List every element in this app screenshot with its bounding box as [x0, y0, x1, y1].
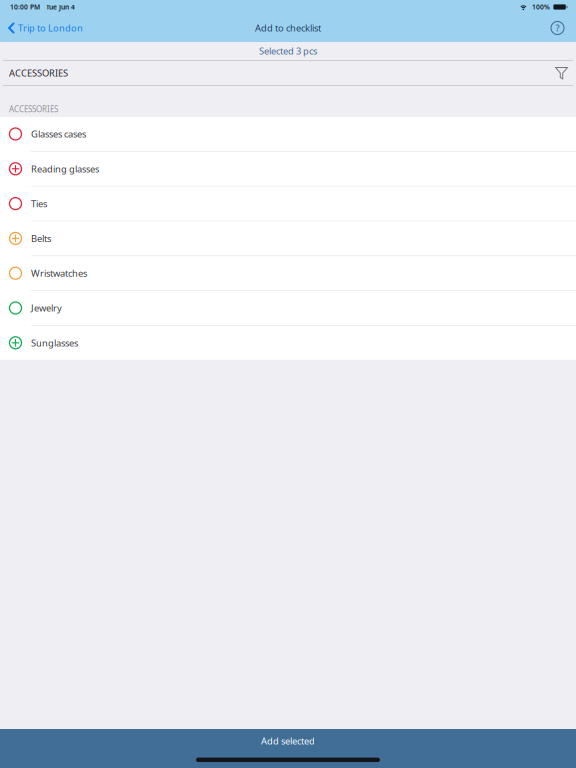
- staticText: 100%: [532, 3, 550, 11]
- staticText: Glasses cases: [31, 128, 86, 140]
- staticText: Trip to London: [18, 22, 83, 34]
- staticText: Wristwatches: [31, 267, 87, 279]
- staticText: Reading glasses: [31, 163, 99, 175]
- button[interactable]: ACCESSORIES: [0, 61, 576, 85]
- staticText: Jewelry: [31, 302, 62, 314]
- button[interactable]: Reading glasses: [0, 152, 576, 187]
- button[interactable]: Help: [544, 14, 571, 41]
- button[interactable]: Sunglasses: [0, 326, 576, 360]
- staticText: ?: [555, 22, 559, 34]
- button[interactable]: Jewelry: [0, 291, 576, 326]
- staticText: Sunglasses: [31, 337, 78, 349]
- button[interactable]: Trip to London: [0, 14, 89, 41]
- button[interactable]: Add selected: [0, 729, 576, 768]
- staticText: Belts: [31, 232, 51, 245]
- button[interactable]: Belts: [0, 221, 576, 256]
- button[interactable]: Glasses cases: [0, 117, 576, 152]
- staticText: Add selected: [261, 735, 315, 747]
- staticText: Ties: [31, 197, 47, 210]
- staticText: Add to checklist: [255, 22, 321, 34]
- button[interactable]: Ties: [0, 187, 576, 221]
- staticText: Tue Jun 4: [46, 3, 75, 11]
- staticText: 10:00 PM: [10, 3, 40, 11]
- staticText: ACCESSORIES: [9, 104, 58, 114]
- staticText: Selected 3 pcs: [259, 45, 317, 57]
- staticText: ACCESSORIES: [9, 67, 68, 79]
- button[interactable]: Wristwatches: [0, 256, 576, 291]
